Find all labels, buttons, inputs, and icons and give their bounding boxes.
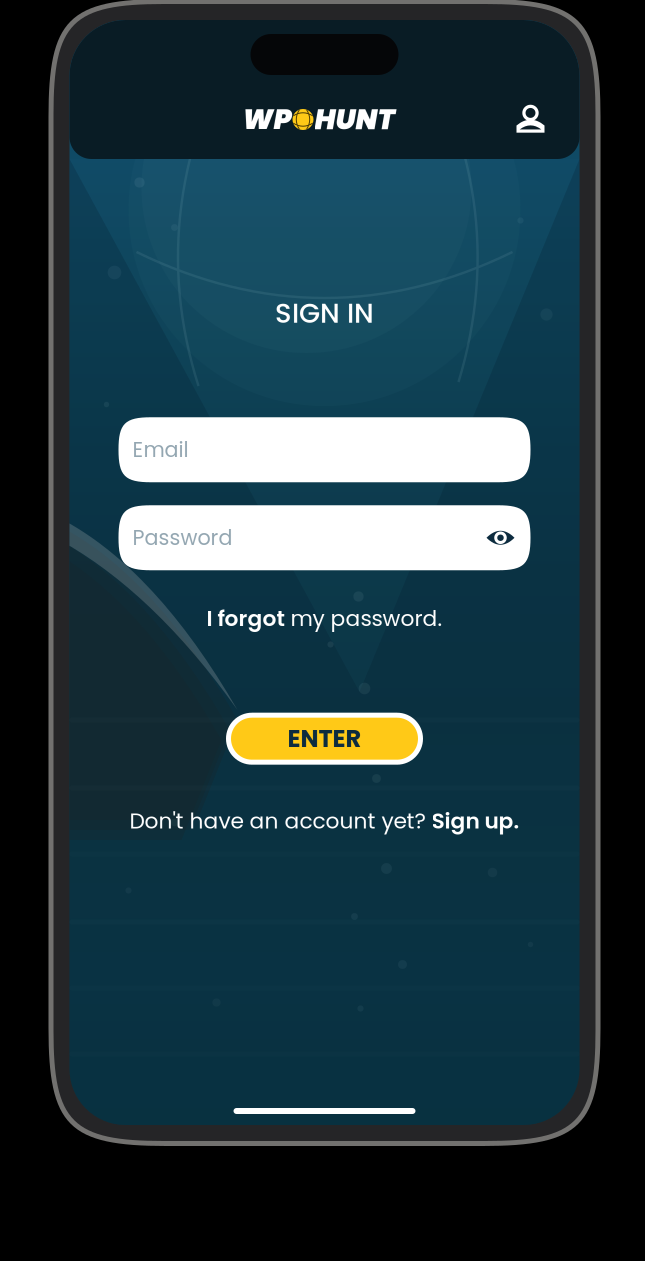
staticText: my password. <box>284 603 442 634</box>
button[interactable]: Don't have an account yet? <box>115 800 533 842</box>
staticText: Email <box>132 435 188 464</box>
button[interactable]: Show password <box>486 529 514 547</box>
staticText: ENTER <box>287 722 361 755</box>
button[interactable]: Account <box>505 95 555 144</box>
staticText: Don't have an account yet? <box>129 806 431 836</box>
staticText: Sign up. <box>431 806 519 836</box>
staticText: WP <box>242 100 291 139</box>
button[interactable]: I forgot <box>192 597 456 640</box>
button[interactable]: ENTER <box>226 713 423 765</box>
staticText: SIGN IN <box>275 294 374 332</box>
staticText: Password <box>132 523 232 552</box>
staticText: HUNT <box>314 100 394 139</box>
staticText: I forgot <box>206 603 284 634</box>
